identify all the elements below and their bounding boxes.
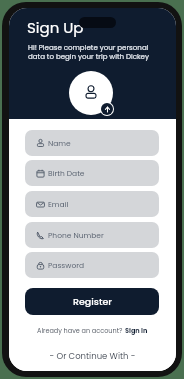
button[interactable]: Profile photo [69,71,113,115]
staticText: Sign In [125,326,148,335]
staticText: Email [48,199,69,209]
button[interactable]: Sign In [125,326,148,335]
button[interactable]: Name [25,130,159,156]
staticText: Already have an account? [37,326,125,335]
button[interactable]: Password [25,252,159,278]
button[interactable]: Birth Date [25,160,159,186]
button[interactable]: Upload photo [101,103,113,115]
staticText: Name [48,138,71,148]
button[interactable]: Email [25,191,159,217]
staticText: Password [48,260,85,270]
button[interactable]: Register [25,288,159,315]
staticText: Hi! Please complete your personal data t… [28,43,150,62]
staticText: Sign Up [27,17,84,38]
staticText: Birth Date [48,168,85,178]
staticText: - Or Continue With - [9,350,176,362]
button[interactable]: Phone Number [25,222,159,248]
staticText: Register [73,295,112,308]
staticText: Phone Number [48,230,104,240]
